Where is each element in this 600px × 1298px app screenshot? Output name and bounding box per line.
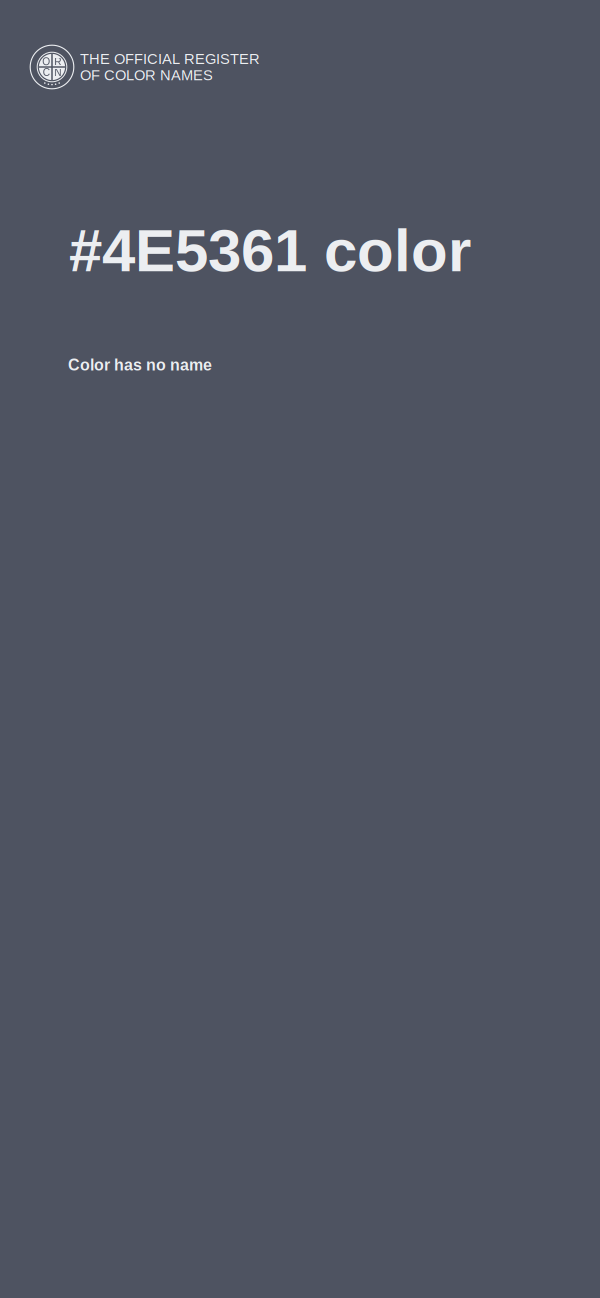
staticText: #4E5361 color <box>69 217 471 284</box>
staticText: OF COLOR NAMES <box>80 67 213 83</box>
button[interactable]: O <box>0 0 260 90</box>
staticText: N <box>54 67 61 78</box>
staticText: O <box>42 56 50 67</box>
staticText: R <box>54 56 61 67</box>
staticText: Color has no name <box>68 356 212 374</box>
staticText: THE OFFICIAL REGISTER <box>80 51 260 67</box>
staticText: C <box>43 67 50 78</box>
